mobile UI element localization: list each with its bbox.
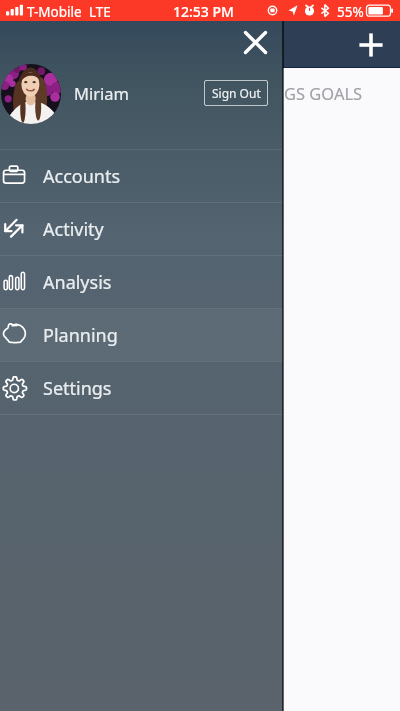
button[interactable]: Accounts	[0, 150, 283, 202]
staticText: 12:53 PM	[173, 2, 234, 21]
button[interactable]: Planning	[0, 309, 283, 361]
staticText: Miriam	[74, 82, 129, 104]
staticText: Settings	[43, 376, 112, 401]
staticText: Sign Out	[212, 85, 261, 101]
button[interactable]: Close	[239, 26, 272, 59]
button[interactable]: Sign Out	[204, 80, 268, 106]
button[interactable]: Add	[354, 28, 388, 62]
staticText: Accounts	[43, 164, 121, 189]
staticText: Activity	[43, 217, 104, 242]
staticText: T-Mobile	[27, 3, 82, 21]
staticText: Analysis	[43, 270, 112, 295]
staticText: SAVINGS GOALS	[237, 82, 363, 104]
button[interactable]: Analysis	[0, 256, 283, 308]
staticText: LTE	[89, 3, 111, 21]
staticText: 55%	[337, 3, 364, 21]
button[interactable]: Settings	[0, 362, 283, 414]
staticText: Planning	[43, 323, 118, 348]
button[interactable]: Activity	[0, 203, 283, 255]
